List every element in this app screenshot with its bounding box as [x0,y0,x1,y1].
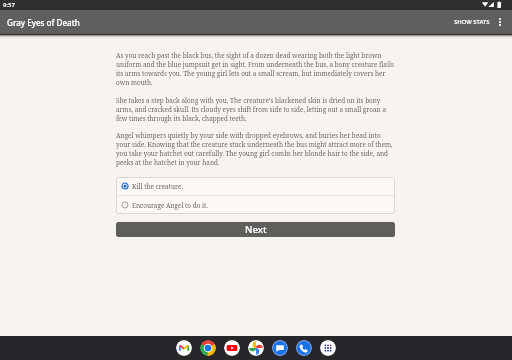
button[interactable]: Next [116,222,395,237]
button[interactable]: Chrome [200,340,216,356]
staticText: 9:57 [3,1,15,9]
button[interactable]: All apps [320,340,336,356]
button[interactable]: More options [491,13,509,31]
other: Wifi, signal, battery [490,0,512,10]
button[interactable]: Gmail [176,340,192,356]
staticText: SHOW STATS [454,18,490,26]
staticText: Next [245,223,267,236]
button[interactable]: Photos [248,340,264,356]
button[interactable]: Encourage Angel to do it. [116,196,395,214]
button[interactable]: YouTube [224,340,240,356]
staticText: Kill the creature. [132,182,184,191]
button[interactable]: Kill the creature. [116,177,395,195]
staticText: As you reach past the black bus, the sig… [116,51,395,87]
button[interactable]: Messages [272,340,288,356]
button[interactable]: Phone [296,340,312,356]
staticText: Angel whimpers quietly by your side with… [116,131,395,167]
staticText: Gray Eyes of Death [7,17,80,28]
staticText: Encourage Angel to do it. [132,201,208,210]
staticText: She takes a step back along with you. Th… [116,96,395,123]
button[interactable]: SHOW STATS [449,13,491,31]
